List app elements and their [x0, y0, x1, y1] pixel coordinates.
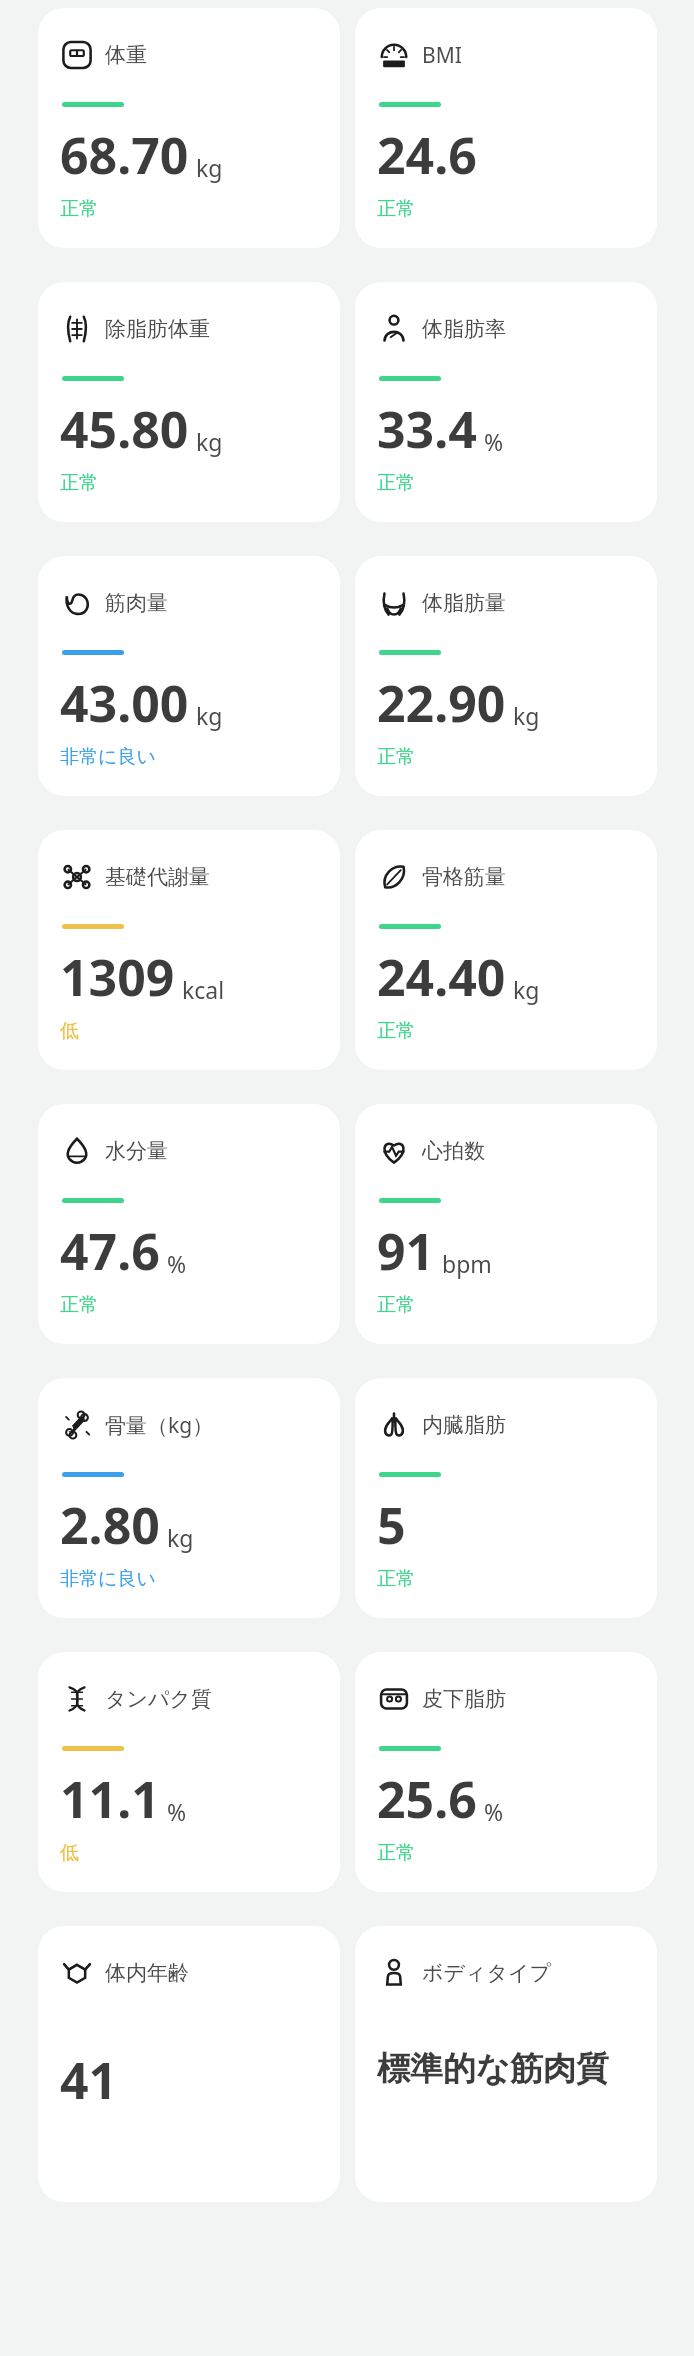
button[interactable]: 筋肉量 [38, 556, 340, 796]
staticText: 43.00 [60, 669, 189, 737]
staticText: % [484, 426, 504, 457]
staticText: % [484, 1796, 504, 1827]
staticText: BMI [422, 41, 462, 70]
staticText: 非常に良い [60, 1567, 156, 1591]
button[interactable]: 水分量 [38, 1104, 340, 1344]
staticText: 体重 [105, 42, 147, 68]
staticText: 正常 [377, 471, 415, 495]
staticText: 基礎代謝量 [105, 864, 210, 890]
staticText: 11.1 [60, 1765, 160, 1833]
staticText: kcal [182, 974, 225, 1005]
staticText: 標準的な筋肉質 [377, 2048, 609, 2090]
staticText: kg [196, 426, 223, 457]
staticText: 正常 [377, 745, 415, 769]
staticText: 体脂肪率 [422, 316, 506, 342]
staticText: 内臓脂肪 [422, 1412, 506, 1438]
button[interactable]: BMI [355, 8, 657, 248]
staticText: kg [167, 1522, 194, 1553]
staticText: 非常に良い [60, 745, 156, 769]
staticText: bpm [442, 1248, 492, 1279]
staticText: 22.90 [377, 669, 506, 737]
staticText: 骨格筋量 [422, 864, 506, 890]
staticText: 正常 [377, 1293, 415, 1317]
staticText: 心拍数 [422, 1138, 485, 1164]
staticText: kg [513, 700, 540, 731]
button[interactable]: 皮下脂肪 [355, 1652, 657, 1892]
button[interactable]: 体重 [38, 8, 340, 248]
staticText: 皮下脂肪 [422, 1686, 506, 1712]
staticText: 33.4 [377, 395, 477, 463]
button[interactable]: 骨格筋量 [355, 830, 657, 1070]
staticText: 水分量 [105, 1138, 168, 1164]
staticText: 骨量（kg） [105, 1411, 214, 1440]
staticText: 正常 [60, 197, 98, 221]
button[interactable]: 内臓脂肪 [355, 1378, 657, 1618]
staticText: 低 [60, 1841, 79, 1865]
staticText: 正常 [377, 1567, 415, 1591]
staticText: 正常 [377, 1841, 415, 1865]
staticText: 1309 [60, 943, 175, 1011]
button[interactable]: 体脂肪量 [355, 556, 657, 796]
staticText: 25.6 [377, 1765, 477, 1833]
staticText: 体内年齢 [105, 1960, 189, 1986]
staticText: 体脂肪量 [422, 590, 506, 616]
staticText: kg [513, 974, 540, 1005]
staticText: 筋肉量 [105, 590, 168, 616]
staticText: 5 [377, 1491, 406, 1559]
staticText: 45.80 [60, 395, 189, 463]
staticText: kg [196, 700, 223, 731]
staticText: ボディタイプ [422, 1960, 551, 1986]
staticText: 24.6 [377, 121, 477, 189]
staticText: 正常 [377, 197, 415, 221]
staticText: kg [196, 152, 223, 183]
staticText: 68.70 [60, 121, 189, 189]
staticText: % [167, 1248, 187, 1279]
button[interactable]: ボディタイプ [355, 1926, 657, 2202]
staticText: 2.80 [60, 1491, 160, 1559]
staticText: 正常 [60, 1293, 98, 1317]
staticText: % [167, 1796, 187, 1827]
staticText: 91 [377, 1217, 435, 1285]
button[interactable]: タンパク質 [38, 1652, 340, 1892]
staticText: 除脂肪体重 [105, 316, 210, 342]
button[interactable]: 除脂肪体重 [38, 282, 340, 522]
button[interactable]: 骨量（kg） [38, 1378, 340, 1618]
button[interactable]: 体内年齢 [38, 1926, 340, 2202]
button[interactable]: 心拍数 [355, 1104, 657, 1344]
staticText: 低 [60, 1019, 79, 1043]
staticText: タンパク質 [105, 1686, 212, 1712]
staticText: 24.40 [377, 943, 506, 1011]
staticText: 正常 [377, 1019, 415, 1043]
staticText: 正常 [60, 471, 98, 495]
staticText: 41 [60, 2046, 118, 2114]
staticText: 47.6 [60, 1217, 160, 1285]
button[interactable]: 体脂肪率 [355, 282, 657, 522]
button[interactable]: 基礎代謝量 [38, 830, 340, 1070]
